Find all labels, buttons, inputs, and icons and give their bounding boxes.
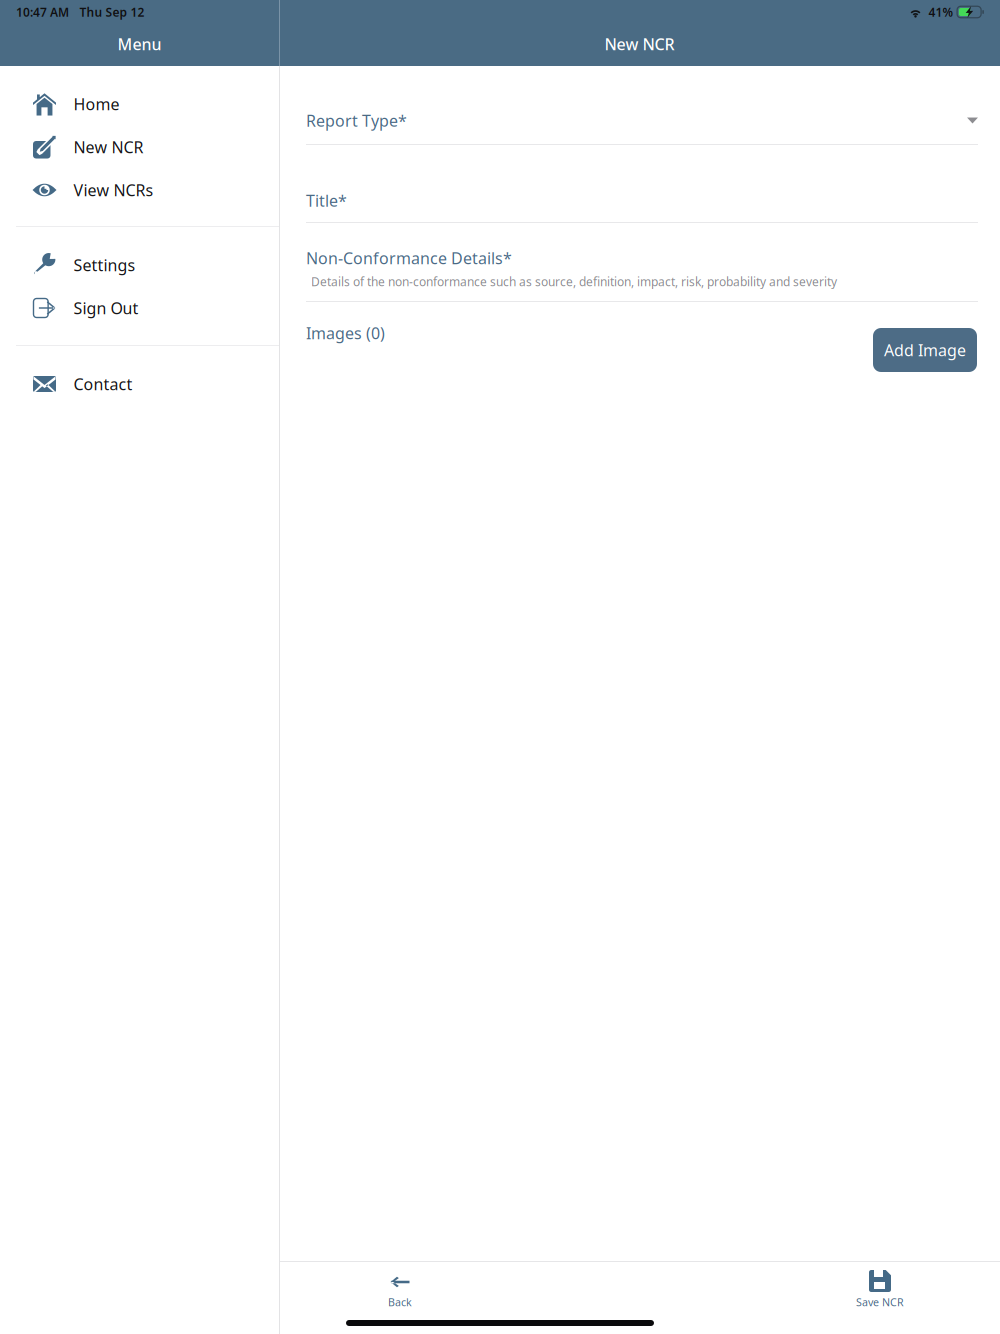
button[interactable]: Title* bbox=[280, 144, 1000, 222]
button[interactable]: Back bbox=[320, 1262, 480, 1320]
staticText: View NCRs bbox=[73, 179, 153, 201]
staticText: Report Type* bbox=[306, 110, 407, 131]
button[interactable]: New NCR bbox=[0, 125, 279, 168]
staticText: Thu Sep 12 bbox=[79, 4, 144, 20]
button[interactable]: Non-Conformance Details* bbox=[280, 222, 1000, 301]
button[interactable]: Contact bbox=[0, 362, 279, 405]
staticText: Details of the non-conformance such as s… bbox=[311, 274, 837, 290]
staticText: Title* bbox=[306, 190, 347, 211]
staticText: 41% bbox=[928, 4, 953, 20]
button[interactable]: Settings bbox=[0, 243, 279, 286]
button[interactable]: Add Image bbox=[873, 322, 977, 372]
staticText: Sign Out bbox=[73, 297, 138, 319]
button[interactable]: Save NCR bbox=[800, 1262, 960, 1320]
staticText: New NCR bbox=[604, 33, 674, 55]
staticText: 10:47 AM bbox=[16, 4, 69, 20]
button[interactable]: Sign Out bbox=[0, 286, 279, 329]
button[interactable]: Home bbox=[0, 82, 279, 125]
staticText: Back bbox=[388, 1295, 412, 1309]
staticText: Non-Conformance Details* bbox=[306, 247, 512, 269]
staticText: New NCR bbox=[73, 136, 143, 158]
staticText: Home bbox=[73, 93, 119, 115]
staticText: Images (0) bbox=[306, 322, 385, 344]
staticText: Contact bbox=[73, 373, 132, 395]
button[interactable]: View NCRs bbox=[0, 168, 279, 211]
button[interactable]: Report Type* bbox=[280, 66, 1000, 144]
staticText: Save NCR bbox=[856, 1295, 904, 1309]
staticText: Menu bbox=[117, 33, 161, 55]
staticText: Add Image bbox=[884, 339, 966, 361]
staticText: Settings bbox=[73, 254, 135, 276]
